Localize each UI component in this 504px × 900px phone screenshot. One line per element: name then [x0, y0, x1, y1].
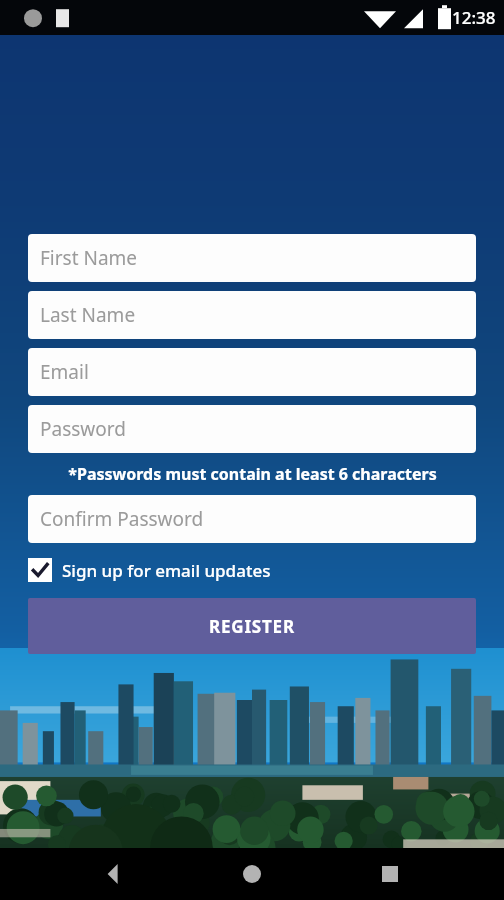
button[interactable]: Sign up for email updates	[28, 556, 271, 584]
staticText: Email	[40, 359, 89, 385]
staticText: REGISTER	[209, 615, 295, 638]
button[interactable]: Recent apps	[366, 850, 414, 898]
button[interactable]: First Name	[28, 234, 476, 282]
staticText: Confirm Password	[40, 506, 204, 532]
button[interactable]: Home	[228, 850, 276, 898]
button[interactable]: Email	[28, 348, 476, 396]
staticText: Password	[40, 416, 126, 442]
staticText: Last Name	[40, 302, 136, 328]
button[interactable]: Back	[90, 850, 138, 898]
staticText: First Name	[40, 245, 138, 271]
staticText: 12:38	[452, 6, 496, 29]
button[interactable]: Confirm Password	[28, 495, 476, 543]
staticText: Sign up for email updates	[62, 559, 271, 582]
button[interactable]: REGISTER	[28, 598, 476, 654]
button[interactable]: Last Name	[28, 291, 476, 339]
staticText: *Passwords must contain at least 6 chara…	[68, 463, 437, 485]
button[interactable]: Password	[28, 405, 476, 453]
